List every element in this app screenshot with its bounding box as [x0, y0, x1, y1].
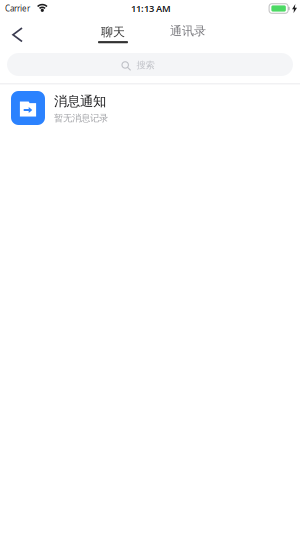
staticText: 消息通知 — [54, 93, 106, 109]
button[interactable]: 通讯录 — [168, 17, 208, 46]
button[interactable]: Back — [0, 19, 32, 44]
staticText: 聊天 — [101, 25, 125, 39]
staticText: 暂无消息记录 — [54, 112, 108, 124]
button[interactable]: 消息通知 — [0, 84, 300, 131]
staticText: 11:13 AM — [131, 2, 171, 15]
staticText: Carrier — [5, 3, 30, 14]
button[interactable]: 聊天 — [93, 17, 133, 46]
staticText: 搜索 — [136, 59, 154, 71]
staticText: 通讯录 — [170, 24, 206, 38]
button[interactable]: 搜索 — [7, 53, 293, 76]
